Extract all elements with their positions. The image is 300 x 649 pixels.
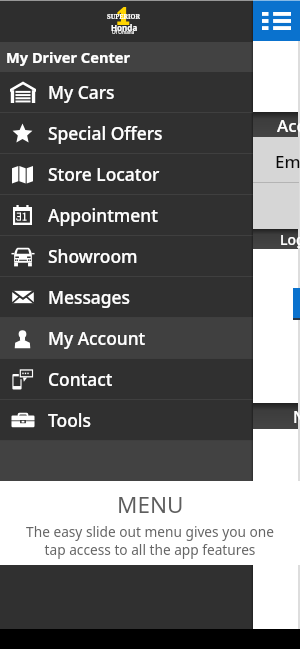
staticText: The easy slide out menu gives you one ta…	[26, 522, 274, 559]
button[interactable]: Open menu	[253, 0, 300, 41]
staticText: MENU	[117, 489, 184, 520]
staticText: Account	[277, 114, 300, 137]
staticText: Appointment	[48, 203, 158, 227]
staticText: Of Omaha	[112, 29, 135, 35]
staticText: Tools	[48, 408, 91, 432]
button[interactable]: Tools	[0, 400, 253, 440]
staticText: My Driver Center	[6, 47, 130, 67]
button[interactable]: My Cars	[0, 72, 253, 112]
staticText: News	[293, 406, 300, 428]
staticText: Log in	[280, 230, 300, 249]
button[interactable]: Store Locator	[0, 154, 253, 194]
button[interactable]: Submit	[293, 288, 300, 320]
staticText: Special Offers	[48, 121, 163, 145]
button[interactable]: Showroom	[0, 236, 253, 276]
staticText: SUPERIOR	[107, 12, 140, 21]
staticText: My Cars	[48, 80, 115, 104]
button[interactable]: Messages	[0, 277, 253, 317]
button[interactable]: Contact	[0, 359, 253, 399]
button[interactable]: Special Offers	[0, 113, 253, 153]
staticText: Email	[275, 150, 300, 173]
button[interactable]: Appointment	[0, 195, 253, 235]
staticText: Store Locator	[48, 162, 160, 186]
staticText: Messages	[48, 285, 131, 309]
staticText: Honda	[111, 22, 138, 33]
staticText: Contact	[48, 367, 113, 391]
staticText: My Account	[48, 326, 146, 350]
staticText: Showroom	[48, 244, 138, 268]
button[interactable]: My Account	[0, 318, 253, 358]
